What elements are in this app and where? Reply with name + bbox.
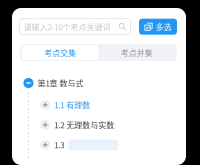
button[interactable]: 第1章 数与式: [23, 75, 173, 91]
button[interactable]: 考点并集: [98, 45, 175, 60]
staticText: 考点交集: [44, 47, 76, 58]
staticText: 考点并集: [121, 47, 153, 58]
staticText: 1.3: [54, 139, 64, 151]
staticText: 多选: [155, 21, 171, 32]
button[interactable]: 1.3: [40, 137, 170, 153]
button[interactable]: 1.1 有理数: [40, 97, 170, 113]
button[interactable]: 多选: [139, 19, 177, 35]
staticText: 1.2 无理数与实数: [54, 119, 114, 131]
button[interactable]: 1.2 无理数与实数: [40, 117, 170, 133]
staticText: 第1章 数与式: [37, 77, 83, 89]
staticText: 请输入2-10个考点关键词: [23, 21, 110, 32]
staticText: 1.1 有理数: [54, 99, 90, 111]
button[interactable]: 考点交集: [22, 45, 98, 60]
